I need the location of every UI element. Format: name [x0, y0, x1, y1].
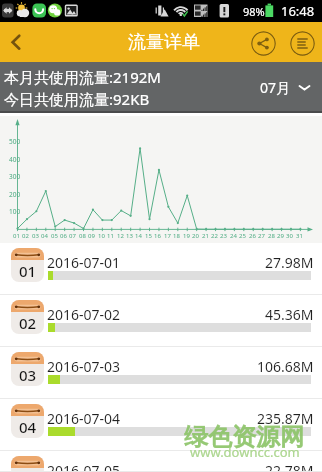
staticText: 18 [173, 232, 180, 240]
staticText: 16 [154, 232, 161, 240]
staticText: 31 [296, 232, 303, 240]
staticText: 26 [249, 232, 256, 240]
staticText: 100 [9, 207, 21, 216]
staticText: 500 [9, 137, 21, 146]
staticText: 09 [88, 232, 95, 240]
staticText: 04 [19, 417, 37, 437]
staticText: 03 [32, 232, 39, 240]
staticText: 04 [41, 232, 48, 240]
staticText: www.downcc.com [190, 443, 300, 461]
button[interactable]: Menu [290, 31, 315, 56]
staticText: 13 [126, 232, 133, 240]
button[interactable]: 07月 [260, 78, 311, 97]
button[interactable]: 03 [0, 347, 322, 399]
staticText: 05 [51, 232, 58, 240]
staticText: 20 [192, 232, 199, 240]
staticText: 15 [145, 232, 152, 240]
staticText: 27.98M [265, 253, 314, 272]
staticText: 106.68M [257, 357, 314, 376]
staticText: 10 [98, 232, 105, 240]
staticText: 2016-07-02 [47, 305, 121, 324]
staticText: 2016-07-05 [47, 461, 121, 472]
staticText: 07月 [260, 78, 291, 97]
staticText: 本月共使用流量:2192M [4, 67, 161, 87]
staticText: 绿色资源网 [184, 422, 304, 452]
staticText: 01 [19, 261, 37, 281]
staticText: 07 [69, 232, 76, 240]
staticText: 22.78M [265, 461, 314, 472]
staticText: 22 [211, 232, 218, 240]
staticText: 03 [19, 365, 37, 385]
staticText: 02 [22, 232, 29, 240]
button[interactable]: Back [0, 22, 34, 62]
staticText: 2016-07-04 [47, 409, 121, 428]
staticText: 45.36M [265, 305, 314, 324]
staticText: 98% [243, 4, 265, 19]
staticText: 14 [135, 232, 142, 240]
button[interactable]: 02 [0, 295, 322, 347]
staticText: 235.87M [257, 409, 314, 428]
staticText: 300 [9, 172, 21, 181]
staticText: 25 [239, 232, 246, 240]
staticText: 28 [268, 232, 275, 240]
staticText: 24 [230, 232, 237, 240]
button[interactable]: 04 [0, 399, 322, 451]
staticText: 06 [60, 232, 67, 240]
staticText: 29 [277, 232, 284, 240]
staticText: 200 [9, 190, 21, 199]
staticText: 27 [258, 232, 265, 240]
button[interactable]: Share [251, 31, 276, 56]
staticText: 17 [164, 232, 171, 240]
staticText: 2016-07-03 [47, 357, 121, 376]
staticText: 流量详单 [128, 31, 200, 54]
staticText: 08 [79, 232, 86, 240]
staticText: 今日共使用流量:92KB [4, 89, 150, 109]
staticText: 2016-07-01 [47, 253, 121, 272]
staticText: 16:48 [281, 2, 315, 20]
staticText: 01 [13, 232, 20, 240]
staticText: 02 [19, 313, 37, 333]
button[interactable]: 01 [0, 243, 322, 295]
staticText: 21 [202, 232, 209, 240]
staticText: 400 [9, 155, 21, 164]
staticText: 12 [117, 232, 124, 240]
button[interactable]: 05 [0, 451, 322, 472]
staticText: 30 [286, 232, 293, 240]
staticText: 11 [107, 232, 114, 240]
staticText: 23 [220, 232, 227, 240]
staticText: 19 [183, 232, 190, 240]
